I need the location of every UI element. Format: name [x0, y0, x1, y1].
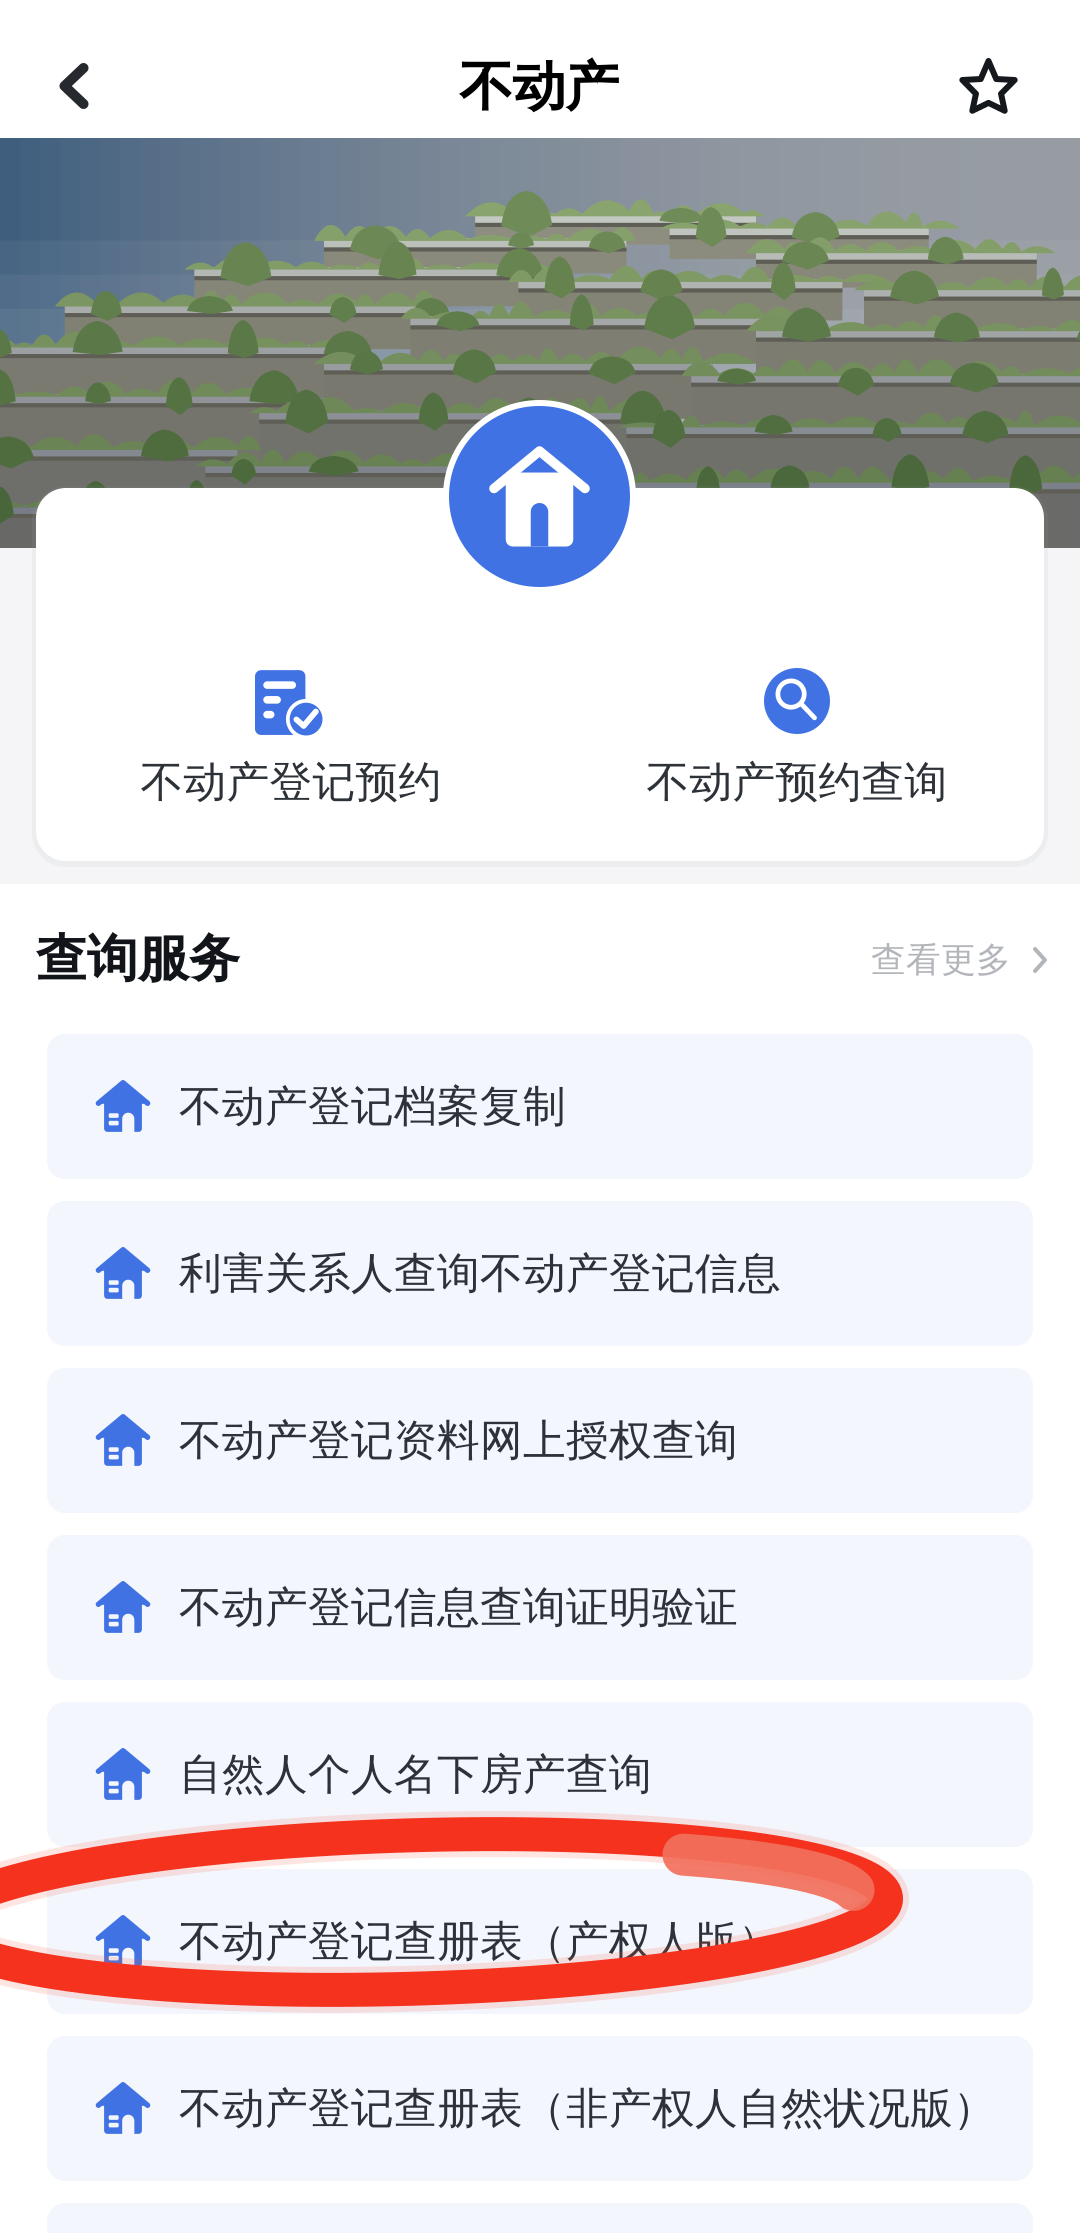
button[interactable]: 不动产登记查册表（非产权人自然状况版） [47, 2036, 1033, 2181]
staticText: 不动产登记信息查询证明验证 [179, 1581, 738, 1634]
staticText: 不动产登记查册表（非产权人自然状况版） [179, 2082, 996, 2135]
button[interactable]: 不动产预约查询 [577, 668, 1017, 818]
staticText: 不动产预约查询 [646, 756, 947, 808]
staticText: 不动产登记档案复制 [179, 1080, 566, 1133]
staticText: 查询服务 [36, 928, 240, 990]
button[interactable]: 查看更多 [871, 925, 1047, 995]
staticText: 不动产登记预约 [140, 756, 441, 808]
button[interactable]: 不动产登记预约 [71, 668, 511, 818]
staticText: 不动产登记资料网上授权查询 [179, 1414, 738, 1467]
button[interactable]: 自然人个人名下房产查询 [47, 1702, 1033, 1847]
button[interactable]: 不动产登记信息查询证明验证 [47, 1535, 1033, 1680]
staticText: 自然人个人名下房产查询 [179, 1748, 652, 1801]
button[interactable]: 不动产登记查册表（产权人版） [47, 1869, 1033, 2014]
button[interactable]: 不动产登记资料网上授权查询 [47, 1368, 1033, 1513]
button[interactable]: 不动产登记档案复制 [47, 1034, 1033, 1179]
staticText: 利害关系人查询不动产登记信息 [179, 1247, 781, 1300]
staticText: 不动产登记查册表（产权人版） [179, 1915, 781, 1968]
button[interactable]: 收藏 [922, 33, 1056, 143]
button[interactable]: 利害关系人查询不动产登记信息 [47, 1201, 1033, 1346]
staticText: 不动产 [459, 54, 618, 120]
staticText: 查看更多 [871, 939, 1011, 981]
button[interactable]: 返回 [7, 31, 141, 141]
